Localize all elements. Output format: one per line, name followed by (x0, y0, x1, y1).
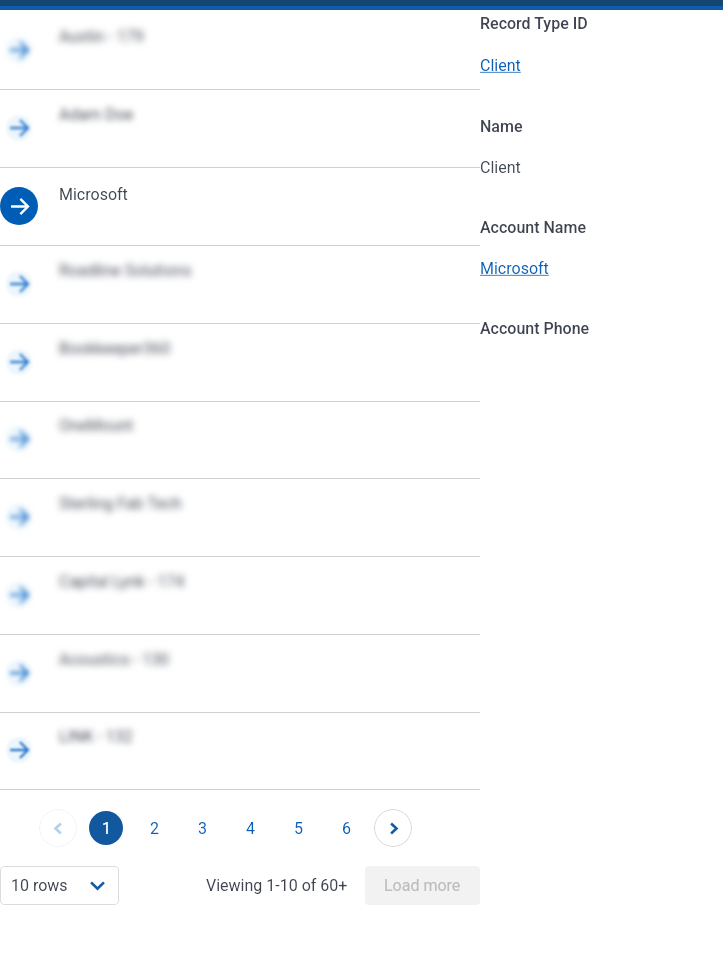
button[interactable]: Bookkeeper360 (0, 324, 480, 402)
staticText: 4 (246, 819, 255, 838)
staticText: Sterling Fab Tech (59, 494, 182, 513)
staticText: Account Name (480, 218, 586, 237)
button[interactable]: Next page (374, 809, 412, 847)
staticText: LINK - 132 (59, 727, 133, 746)
staticText: Bookkeeper360 (59, 339, 171, 358)
button[interactable]: Previous page (39, 809, 77, 847)
button[interactable]: Adam Doe (0, 90, 480, 168)
button[interactable]: Microsoft (480, 259, 549, 278)
button[interactable]: 6 (329, 811, 363, 845)
button[interactable]: Sterling Fab Tech (0, 479, 480, 557)
staticText: Austin - 179 (59, 27, 144, 46)
staticText: 2 (150, 819, 159, 838)
button[interactable]: 3 (185, 811, 219, 845)
button[interactable]: Roadline Solutions (0, 246, 480, 324)
staticText: Roadline Solutions (59, 261, 192, 280)
button[interactable]: OneMount (0, 401, 480, 479)
staticText: Capital Lynk - 174 (59, 572, 185, 591)
staticText: 10 rows (11, 876, 68, 895)
button[interactable]: LINK - 132 (0, 712, 480, 790)
staticText: Load more (384, 876, 461, 895)
staticText: Record Type ID (480, 14, 588, 33)
staticText: Microsoft (59, 185, 128, 204)
button[interactable]: 4 (233, 811, 267, 845)
button[interactable]: 10 rows (0, 866, 119, 905)
button[interactable]: Microsoft (0, 168, 480, 246)
button[interactable]: 5 (281, 811, 315, 845)
staticText: Account Phone (480, 319, 590, 338)
button[interactable]: 1 (89, 811, 123, 845)
staticText: Acoustics - 130 (59, 650, 170, 669)
staticText: 6 (342, 819, 351, 838)
staticText: 1 (102, 819, 111, 838)
button[interactable]: Austin - 179 (0, 12, 480, 90)
staticText: Name (480, 117, 523, 136)
staticText: 5 (294, 819, 303, 838)
button[interactable]: Capital Lynk - 174 (0, 557, 480, 635)
staticText: Viewing 1-10 of 60+ (206, 876, 348, 895)
staticText: Adam Doe (59, 105, 134, 124)
button[interactable]: Acoustics - 130 (0, 635, 480, 713)
button[interactable]: Client (480, 56, 521, 75)
button[interactable]: 2 (137, 811, 171, 845)
staticText: OneMount (59, 416, 134, 435)
staticText: Client (480, 158, 521, 177)
button[interactable]: Load more (365, 866, 480, 905)
staticText: 3 (198, 819, 207, 838)
